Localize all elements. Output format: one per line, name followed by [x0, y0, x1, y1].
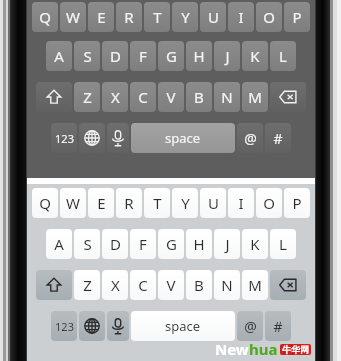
button[interactable]: U: [200, 2, 226, 32]
staticText: U: [208, 7, 219, 27]
button[interactable]: F: [130, 41, 156, 71]
button[interactable]: O: [256, 2, 282, 32]
staticText: D: [110, 46, 121, 66]
button[interactable]: space: [131, 311, 235, 341]
button[interactable]: I: [228, 188, 254, 218]
button[interactable]: Q: [32, 188, 58, 218]
staticText: @: [244, 129, 257, 148]
button[interactable]: V: [158, 82, 184, 112]
button[interactable]: Y: [172, 2, 198, 32]
button[interactable]: X: [102, 82, 128, 112]
button[interactable]: @: [237, 123, 263, 153]
staticText: T: [153, 193, 162, 213]
button[interactable]: G: [158, 229, 184, 259]
button[interactable]: Z: [74, 82, 100, 112]
button[interactable]: Dictation: [107, 311, 129, 341]
staticText: space: [165, 317, 201, 335]
button[interactable]: Dictation: [107, 123, 129, 153]
staticText: New: [215, 339, 249, 359]
button[interactable]: Switch keyboard: [79, 123, 105, 153]
button[interactable]: L: [270, 229, 296, 259]
staticText: R: [124, 7, 134, 27]
button[interactable]: V: [158, 270, 184, 300]
staticText: hua: [249, 339, 278, 359]
button[interactable]: A: [46, 41, 72, 71]
button[interactable]: J: [214, 41, 240, 71]
staticText: G: [166, 46, 177, 66]
button[interactable]: A: [46, 229, 72, 259]
button[interactable]: L: [270, 41, 296, 71]
button[interactable]: Shift: [36, 82, 72, 112]
staticText: X: [111, 87, 120, 107]
button[interactable]: B: [186, 270, 212, 300]
button[interactable]: N: [214, 82, 240, 112]
staticText: X: [111, 275, 120, 295]
button[interactable]: C: [130, 270, 156, 300]
button[interactable]: X: [102, 270, 128, 300]
button[interactable]: E: [88, 2, 114, 32]
button[interactable]: J: [214, 229, 240, 259]
button[interactable]: S: [74, 229, 100, 259]
button[interactable]: M: [242, 270, 268, 300]
staticText: E: [97, 193, 106, 213]
staticText: K: [250, 234, 260, 254]
button[interactable]: #: [265, 123, 291, 153]
button[interactable]: R: [116, 2, 142, 32]
button[interactable]: 123: [51, 311, 77, 341]
button[interactable]: #: [265, 311, 291, 341]
button[interactable]: F: [130, 229, 156, 259]
button[interactable]: W: [60, 2, 86, 32]
staticText: U: [208, 193, 219, 213]
staticText: L: [279, 234, 287, 254]
button[interactable]: P: [284, 188, 310, 218]
staticText: S: [83, 234, 92, 254]
button[interactable]: Switch keyboard: [79, 311, 105, 341]
button[interactable]: O: [256, 188, 282, 218]
button[interactable]: 123: [51, 123, 77, 153]
staticText: N: [221, 275, 233, 295]
button[interactable]: U: [200, 188, 226, 218]
button[interactable]: T: [144, 2, 170, 32]
button[interactable]: N: [214, 270, 240, 300]
button[interactable]: Q: [32, 2, 58, 32]
button[interactable]: @: [237, 311, 263, 341]
staticText: F: [139, 234, 147, 254]
button[interactable]: W: [60, 188, 86, 218]
button[interactable]: B: [186, 82, 212, 112]
button[interactable]: Backspace: [270, 82, 306, 112]
button[interactable]: Backspace: [270, 270, 306, 300]
staticText: Q: [39, 193, 51, 213]
button[interactable]: H: [186, 41, 212, 71]
staticText: W: [66, 7, 80, 27]
button[interactable]: M: [242, 82, 268, 112]
staticText: H: [193, 234, 205, 254]
button[interactable]: S: [74, 41, 100, 71]
staticText: Z: [83, 87, 92, 107]
staticText: W: [66, 193, 80, 213]
button[interactable]: G: [158, 41, 184, 71]
button[interactable]: K: [242, 229, 268, 259]
staticText: 123: [55, 131, 74, 146]
button[interactable]: T: [144, 188, 170, 218]
staticText: B: [194, 87, 204, 107]
staticText: A: [54, 46, 64, 66]
button[interactable]: P: [284, 2, 310, 32]
button[interactable]: Y: [172, 188, 198, 218]
button[interactable]: D: [102, 229, 128, 259]
button[interactable]: Shift: [36, 270, 72, 300]
button[interactable]: E: [88, 188, 114, 218]
button[interactable]: C: [130, 82, 156, 112]
staticText: I: [238, 7, 244, 27]
staticText: T: [153, 7, 162, 27]
button[interactable]: R: [116, 188, 142, 218]
button[interactable]: D: [102, 41, 128, 71]
staticText: 牛华网: [282, 344, 309, 355]
button[interactable]: I: [228, 2, 254, 32]
staticText: C: [138, 275, 148, 295]
button[interactable]: space: [131, 123, 235, 153]
staticText: H: [193, 46, 205, 66]
button[interactable]: K: [242, 41, 268, 71]
staticText: #: [273, 129, 283, 148]
button[interactable]: H: [186, 229, 212, 259]
button[interactable]: Z: [74, 270, 100, 300]
